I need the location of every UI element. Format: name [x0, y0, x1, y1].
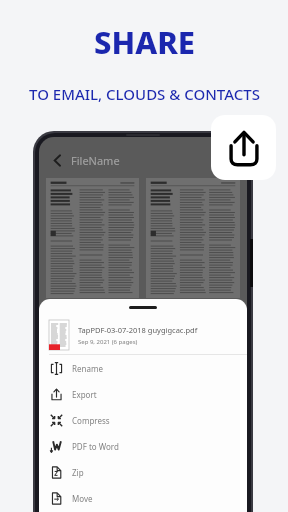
staticText: PDF to Word — [72, 441, 119, 452]
staticText: SHARE — [94, 21, 195, 63]
button[interactable]: Zip — [39, 459, 247, 485]
button[interactable]: Rename — [39, 355, 247, 381]
button[interactable]: Share — [211, 115, 276, 180]
button[interactable]: Compress — [39, 407, 247, 433]
button[interactable]: Back — [48, 151, 66, 169]
staticText: TapPDF-03-07-2018 guygigcac.pdf — [78, 325, 198, 335]
button[interactable]: Export — [39, 381, 247, 407]
staticText: Zip — [72, 467, 84, 478]
staticText: TO EMAIL, CLOUDS & CONTACTS — [29, 84, 260, 104]
staticText: FileName — [71, 153, 120, 168]
button[interactable]: Lock — [220, 151, 238, 169]
staticText: Rename — [72, 363, 103, 374]
staticText: Compress — [72, 415, 110, 426]
staticText: Export — [72, 389, 97, 400]
staticText: Sep 9, 2021 (6 pages) — [78, 338, 138, 346]
staticText: Move — [72, 493, 93, 504]
button[interactable]: Move — [39, 485, 247, 511]
button[interactable]: TapPDF-03-07-2018 guygigcac.pdf — [39, 316, 247, 354]
button[interactable]: PDF to Word — [39, 433, 247, 459]
